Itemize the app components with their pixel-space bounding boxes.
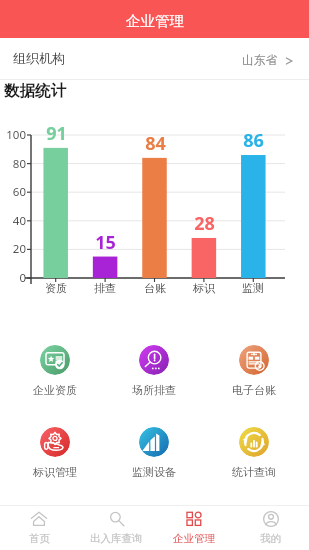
- button[interactable]: 组织机构: [0, 38, 309, 79]
- staticText: 组织机构: [13, 50, 65, 66]
- staticText: 资质: [45, 281, 67, 295]
- staticText: 91: [46, 121, 67, 146]
- button[interactable]: 统计查询: [204, 427, 304, 479]
- staticText: 电子台账: [232, 383, 276, 397]
- staticText: 统计查询: [232, 465, 276, 479]
- staticText: 20: [12, 241, 26, 257]
- staticText: 场所排查: [132, 383, 176, 397]
- button[interactable]: 监测设备: [104, 427, 204, 479]
- staticText: 企业管理: [126, 12, 184, 30]
- staticText: 40: [12, 213, 26, 229]
- staticText: 企业资质: [33, 383, 77, 397]
- button[interactable]: 电子台账: [204, 345, 304, 397]
- staticText: 86: [243, 128, 264, 153]
- staticText: 数据统计: [4, 81, 66, 101]
- staticText: 监测设备: [132, 465, 176, 479]
- staticText: 企业管理: [173, 532, 215, 545]
- staticText: 100: [6, 127, 26, 143]
- staticText: 出入库查询: [90, 532, 143, 545]
- button[interactable]: 首页: [0, 506, 78, 550]
- button[interactable]: 出入库查询: [78, 506, 155, 550]
- staticText: 首页: [29, 532, 50, 545]
- staticText: 28: [194, 211, 215, 236]
- staticText: 80: [12, 156, 26, 172]
- button[interactable]: 我的: [232, 506, 309, 550]
- button[interactable]: 企业资质: [5, 345, 104, 397]
- button[interactable]: 标识管理: [5, 427, 104, 479]
- staticText: 标识管理: [33, 465, 77, 479]
- staticText: 山东省: [242, 53, 278, 68]
- staticText: 排查: [94, 281, 116, 295]
- button[interactable]: 企业管理: [155, 506, 232, 550]
- staticText: 15: [95, 230, 116, 255]
- button[interactable]: 场所排查: [104, 345, 204, 397]
- staticText: 监测: [242, 281, 264, 295]
- staticText: 0: [19, 270, 26, 286]
- staticText: 台账: [144, 281, 166, 295]
- staticText: 84: [145, 131, 166, 156]
- staticText: 标识: [193, 281, 215, 295]
- staticText: 60: [12, 184, 26, 200]
- staticText: 我的: [260, 532, 281, 545]
